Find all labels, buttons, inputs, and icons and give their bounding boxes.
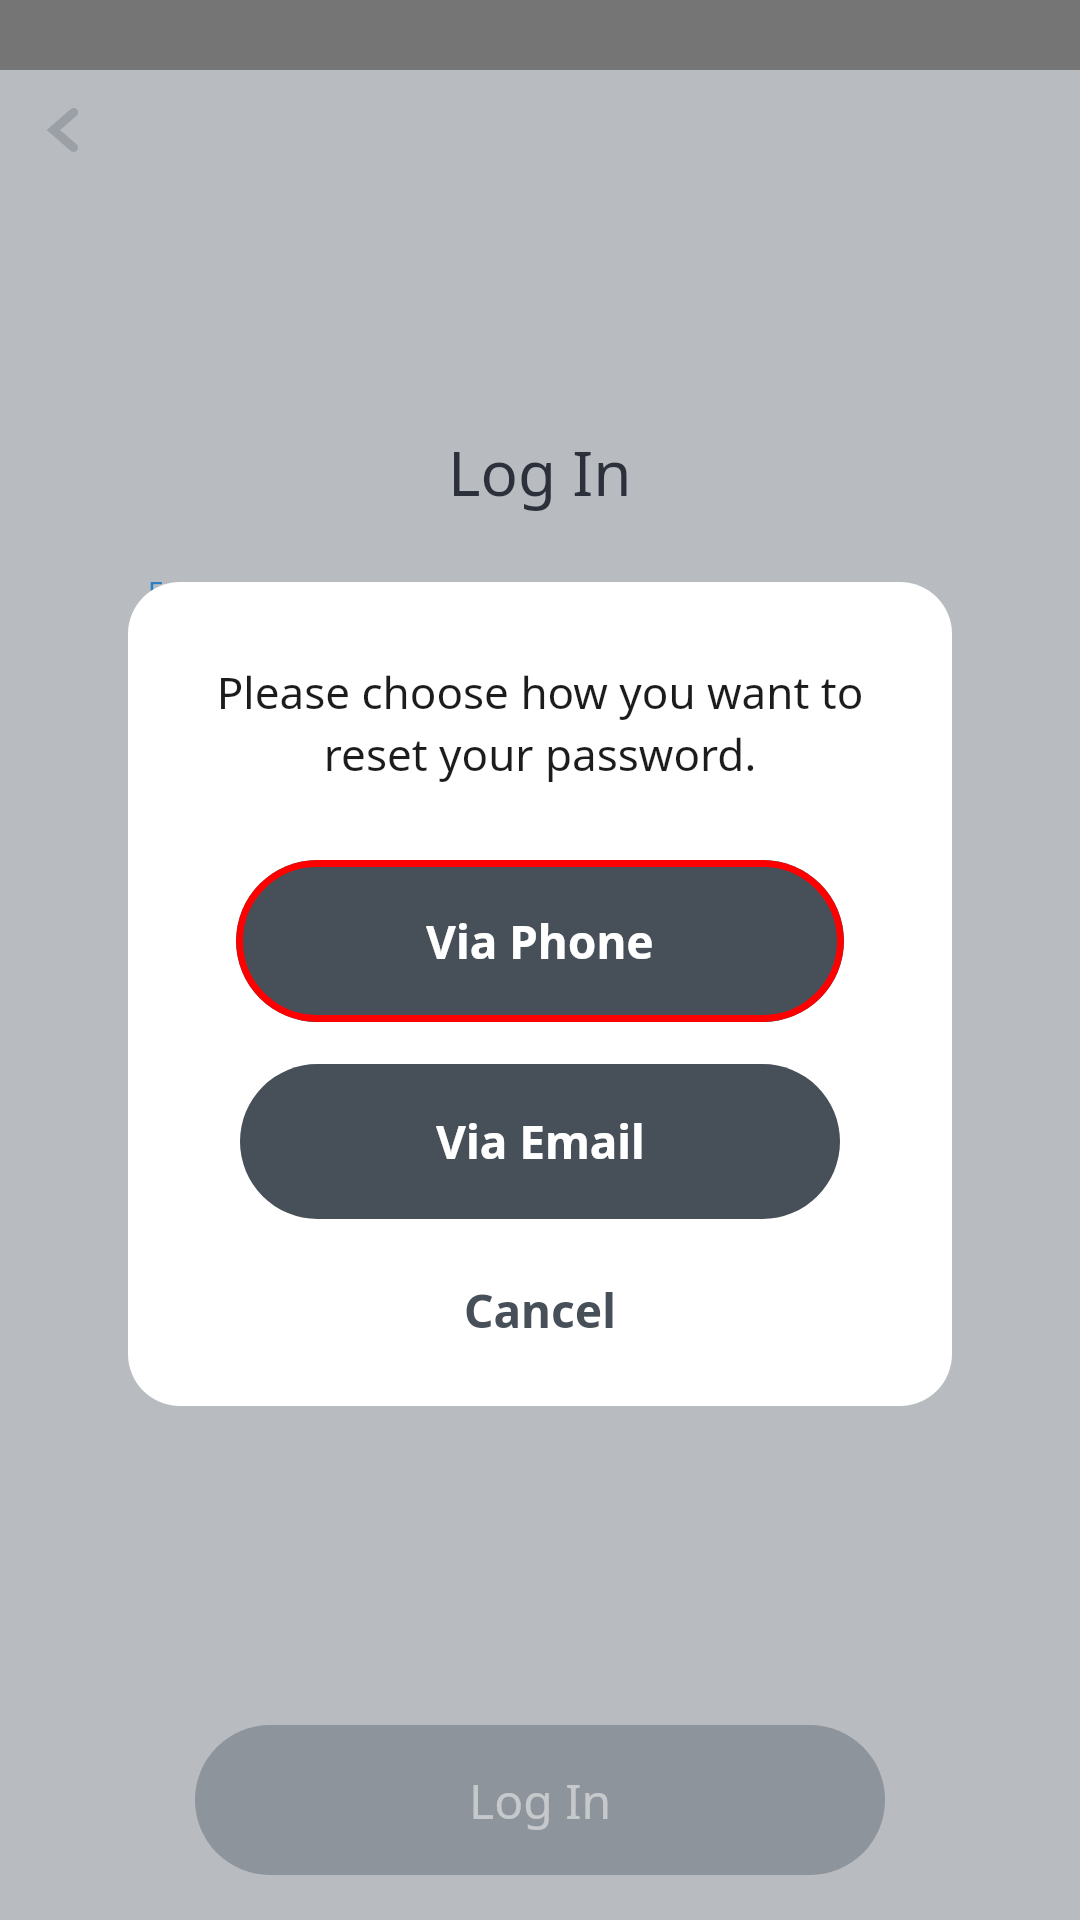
button[interactable]: Log In [195, 1725, 885, 1875]
staticText: Via Phone [426, 910, 654, 973]
button[interactable]: Via Email [240, 1064, 840, 1219]
staticText: Please choose how you want to reset your… [168, 662, 912, 784]
button[interactable]: Via Phone [236, 860, 844, 1022]
button[interactable]: Back [26, 92, 102, 168]
staticText: Log In [448, 430, 632, 514]
staticText: Forgot [148, 572, 236, 610]
staticText: Log In [469, 1768, 612, 1833]
staticText: Via Email [436, 1110, 645, 1173]
staticText: Cancel [464, 1279, 616, 1342]
button[interactable]: Cancel [240, 1255, 840, 1365]
